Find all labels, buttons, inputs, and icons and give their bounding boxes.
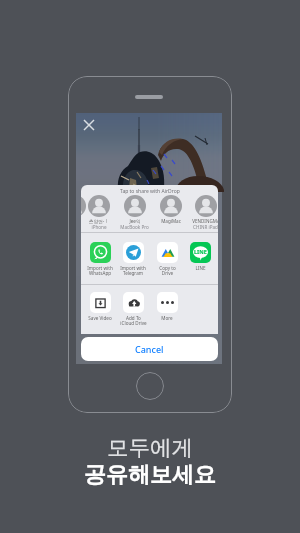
staticText: CHINR iPad <box>193 224 218 230</box>
staticText: Add To iCloud Drive <box>120 315 147 327</box>
staticText: LINE <box>195 265 206 271</box>
staticText: Import with WhatsApp <box>87 265 113 277</box>
staticText: More <box>161 315 173 321</box>
staticText: Tap to share with AirDrop <box>120 188 180 195</box>
button[interactable]: More <box>151 292 183 321</box>
button[interactable]: MagiMac <box>155 195 186 224</box>
staticText: MacBook Pro <box>120 224 149 230</box>
staticText: VENDINGMA <box>192 218 218 224</box>
button[interactable]: Cancel <box>81 337 218 361</box>
button[interactable]: Copy to Drive <box>151 242 183 277</box>
staticText: 모두에게 <box>107 434 193 461</box>
button[interactable]: Jee익 <box>119 195 150 230</box>
staticText: 공유해보세요 <box>84 461 216 489</box>
button[interactable]: Close <box>81 117 97 133</box>
staticText: MagiMac <box>161 218 181 224</box>
staticText: 츤얌언-ㅣ <box>89 218 109 224</box>
button[interactable] <box>81 195 90 224</box>
button[interactable]: VENDINGMA <box>190 195 218 230</box>
staticText: Import with Telegram <box>120 265 146 277</box>
button[interactable]: LINE <box>184 242 216 271</box>
button[interactable]: Import with WhatsApp <box>84 242 116 277</box>
button[interactable]: Save Video <box>84 292 116 321</box>
button[interactable]: Add To iCloud Drive <box>117 292 149 327</box>
staticText: LINE <box>194 248 207 255</box>
staticText: Cancel <box>135 343 164 355</box>
staticText: Copy to Drive <box>159 265 176 277</box>
staticText: Jee익 <box>129 218 141 224</box>
button[interactable]: Import with Telegram <box>117 242 149 277</box>
button[interactable]: 츤얌언-ㅣ <box>83 195 114 230</box>
staticText: iPhone <box>91 224 107 230</box>
staticText: Save Video <box>88 315 112 321</box>
